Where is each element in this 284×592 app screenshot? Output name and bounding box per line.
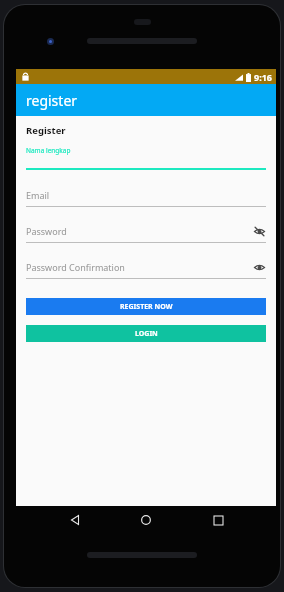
staticText: Email bbox=[26, 189, 50, 201]
button[interactable]: Show password bbox=[252, 224, 266, 238]
staticText: 9:16 bbox=[254, 71, 272, 83]
staticText: Password bbox=[26, 225, 67, 237]
button[interactable]: Recents bbox=[205, 507, 231, 533]
staticText: Nama lengkap bbox=[26, 146, 71, 155]
button[interactable]: Home bbox=[133, 507, 159, 533]
staticText: REGISTER NOW bbox=[120, 302, 173, 312]
button[interactable]: Nama lengkap bbox=[26, 146, 266, 170]
staticText: register bbox=[26, 91, 78, 110]
button[interactable]: Password bbox=[26, 223, 266, 243]
button[interactable]: Email bbox=[26, 187, 266, 207]
staticText: LOGIN bbox=[135, 329, 158, 339]
button[interactable]: Hide password bbox=[252, 260, 266, 274]
staticText: Register bbox=[26, 124, 66, 137]
button[interactable]: register bbox=[16, 84, 276, 116]
button[interactable]: LOGIN bbox=[26, 325, 266, 342]
button[interactable]: REGISTER NOW bbox=[26, 298, 266, 315]
button[interactable]: Back bbox=[62, 507, 88, 533]
button[interactable]: Password Confirmation bbox=[26, 259, 266, 279]
staticText: Password Confirmation bbox=[26, 261, 125, 273]
